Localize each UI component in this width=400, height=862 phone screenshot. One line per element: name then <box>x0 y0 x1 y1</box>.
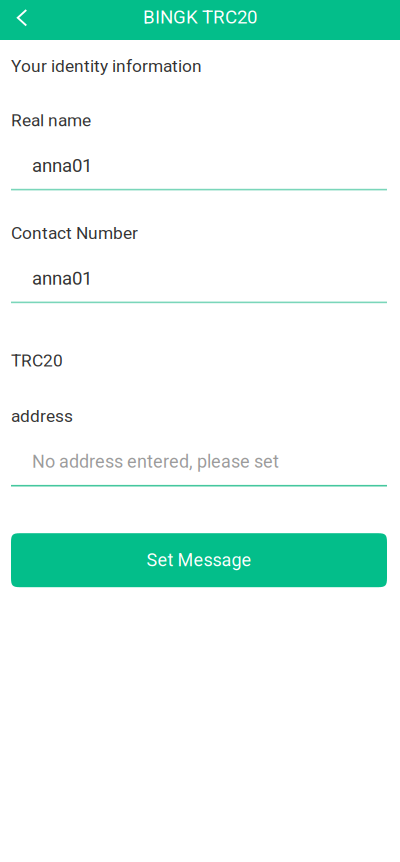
button[interactable]: Back <box>0 0 44 34</box>
staticText: anna01 <box>32 267 92 289</box>
staticText: Set Message <box>146 550 251 571</box>
staticText: BINGK TRC20 <box>143 6 257 28</box>
staticText: Contact Number <box>11 223 138 243</box>
staticText: anna01 <box>32 155 92 176</box>
staticText: No address entered, please set <box>32 451 279 472</box>
staticText: TRC20 <box>11 350 63 371</box>
staticText: Real name <box>11 110 91 130</box>
button[interactable]: anna01 <box>11 267 387 303</box>
staticText: Your identity information <box>11 56 202 76</box>
button[interactable]: Set Message <box>11 533 387 587</box>
button[interactable]: anna01 <box>11 155 387 190</box>
staticText: address <box>11 406 73 426</box>
button[interactable]: No address entered, please set <box>11 451 387 486</box>
